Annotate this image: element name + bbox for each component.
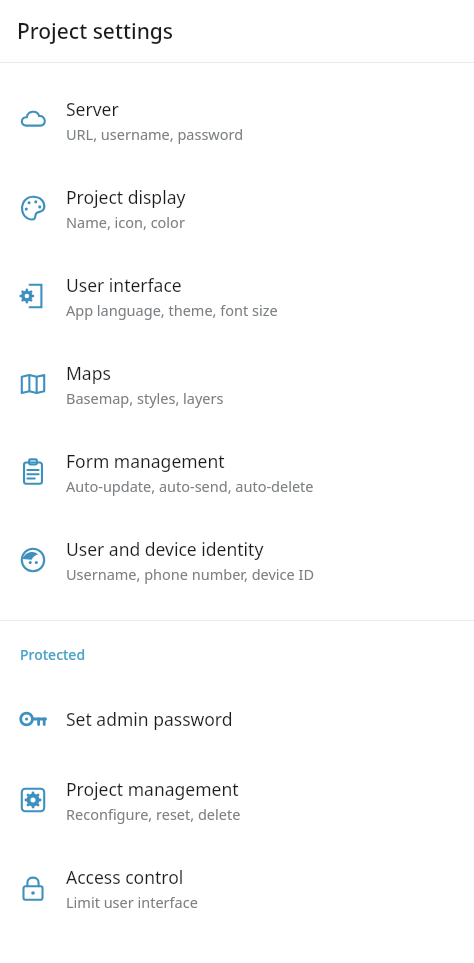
staticText: Limit user interface	[66, 892, 198, 912]
staticText: App language, theme, font size	[66, 300, 278, 320]
other: Form management	[0, 458, 66, 486]
staticText: Protected	[20, 645, 86, 664]
other: User interface	[0, 282, 66, 310]
button[interactable]: User interface	[0, 252, 474, 340]
staticText: Project management	[66, 777, 239, 801]
staticText: Reconfigure, reset, delete	[66, 804, 241, 824]
staticText: Project display	[66, 185, 186, 209]
staticText: Server	[66, 97, 119, 121]
other: Set admin password	[0, 705, 66, 733]
staticText: Form management	[66, 449, 225, 473]
other: Maps	[0, 370, 66, 398]
other: Server	[0, 106, 66, 134]
button[interactable]: Project display	[0, 164, 474, 252]
staticText: Basemap, styles, layers	[66, 388, 224, 408]
button[interactable]: Access control	[0, 844, 474, 932]
staticText: Access control	[66, 865, 184, 889]
button[interactable]: Form management	[0, 428, 474, 516]
staticText: Project settings	[17, 17, 174, 46]
staticText: Maps	[66, 361, 111, 385]
staticText: User interface	[66, 273, 182, 297]
staticText: Username, phone number, device ID	[66, 564, 314, 584]
staticText: Auto-update, auto-send, auto-delete	[66, 476, 314, 496]
other: Project management	[0, 786, 66, 814]
button[interactable]: Server	[0, 76, 474, 164]
button[interactable]: User and device identity	[0, 516, 474, 604]
staticText: User and device identity	[66, 537, 264, 561]
button[interactable]: Maps	[0, 340, 474, 428]
other: Access control	[0, 874, 66, 902]
staticText: URL, username, password	[66, 124, 244, 144]
staticText: Set admin password	[66, 707, 233, 731]
other: User and device identity	[0, 546, 66, 574]
staticText: Name, icon, color	[66, 212, 185, 232]
other: Project display	[0, 194, 66, 222]
button[interactable]: Project management	[0, 756, 474, 844]
button[interactable]: Set admin password	[0, 681, 474, 756]
